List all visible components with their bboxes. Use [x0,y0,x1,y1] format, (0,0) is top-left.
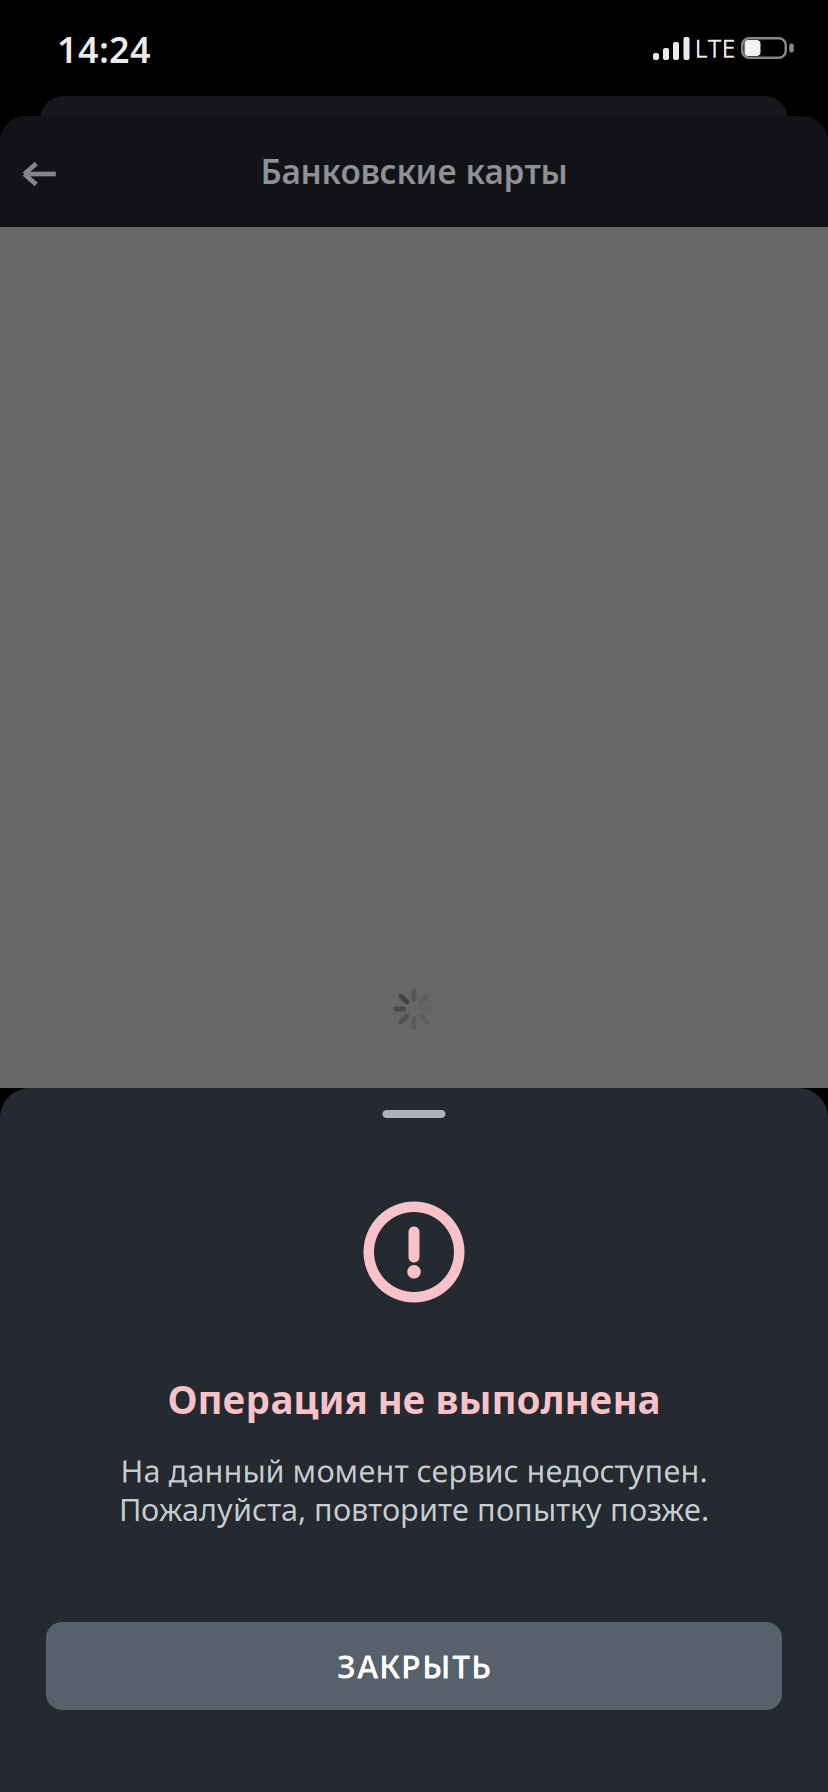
staticText: ЗАКРЫТЬ [337,1645,491,1687]
staticText: Банковские карты [260,149,567,193]
staticText: Пожалуйста, повторите попытку позже. [119,1489,709,1529]
button[interactable]: ЗАКРЫТЬ [46,1622,782,1710]
staticText: 14:24 [57,25,151,73]
staticText: LTE [694,31,735,65]
button[interactable]: Назад [0,139,80,209]
staticText: На данный момент сервис недоступен. [120,1450,707,1491]
staticText: Операция не выполнена [167,1373,660,1425]
